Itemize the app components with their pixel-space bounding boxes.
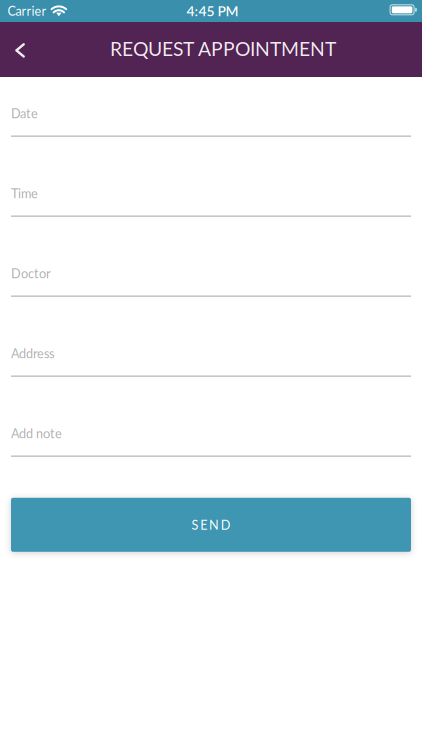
button[interactable]: Address (11, 346, 411, 377)
button[interactable]: Doctor (11, 266, 411, 297)
staticText: Address (11, 346, 54, 361)
staticText: Doctor (11, 266, 51, 281)
button[interactable]: Date (11, 106, 411, 137)
staticText: SEND (191, 517, 231, 532)
staticText: Add note (11, 426, 62, 441)
staticText: Time (11, 186, 38, 201)
button[interactable]: Time (11, 186, 411, 217)
staticText: 4:45 PM (186, 3, 238, 19)
staticText: Date (11, 106, 38, 121)
button[interactable]: SEND (11, 498, 411, 552)
button[interactable]: Back (4, 28, 36, 72)
button[interactable]: Add note (11, 426, 411, 457)
staticText: REQUEST APPOINTMENT (110, 37, 336, 60)
staticText: Carrier (7, 3, 46, 18)
